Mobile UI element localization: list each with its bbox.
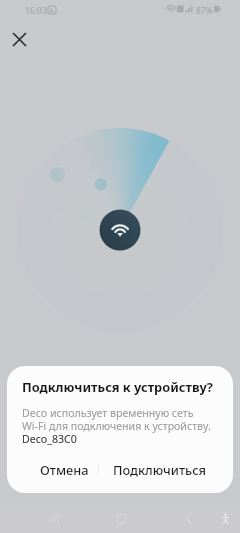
button[interactable]: Подключиться [92, 450, 226, 489]
staticText: Подключиться к устройству? [22, 378, 213, 395]
staticText: Подключиться [113, 461, 206, 478]
staticText: Deco использует временную сеть Wi-Fi для… [22, 406, 211, 446]
staticText: 16:03 [25, 5, 47, 17]
staticText: Deco_83C0 [22, 432, 77, 446]
button[interactable]: Accessibility [209, 503, 240, 533]
staticText: 87% [196, 5, 213, 17]
button[interactable]: Отмена [19, 450, 110, 489]
staticText: Отмена [40, 461, 89, 478]
button[interactable]: Close [2, 22, 36, 56]
